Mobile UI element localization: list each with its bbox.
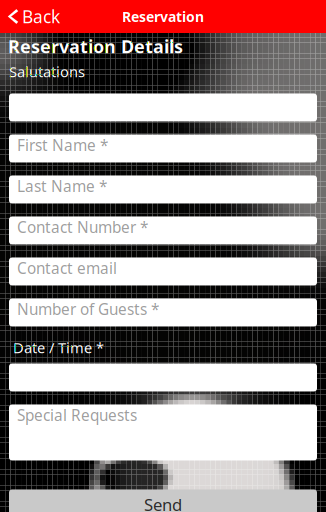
staticText: Special Requests	[17, 404, 137, 425]
staticText: Date / Time *	[13, 337, 104, 357]
button[interactable]: Contact Number *	[9, 216, 317, 244]
staticText: Number of Guests *	[17, 299, 159, 319]
button[interactable]: Contact email	[9, 257, 317, 285]
staticText: Reservation	[122, 7, 204, 26]
button[interactable]: Send	[9, 489, 317, 512]
staticText: Reservation Details	[8, 34, 183, 58]
button[interactable]	[9, 93, 317, 121]
staticText: Last Name *	[17, 176, 107, 196]
button[interactable]: Back	[0, 0, 60, 33]
button[interactable]: Special Requests	[9, 404, 317, 460]
staticText: Contact Number *	[17, 217, 148, 237]
staticText: First Name *	[17, 135, 108, 155]
staticText: Salutations	[9, 61, 85, 81]
button[interactable]: First Name *	[9, 134, 317, 162]
staticText: Back	[22, 5, 60, 28]
button[interactable]: Number of Guests *	[9, 298, 317, 326]
staticText: Send	[144, 493, 182, 512]
button[interactable]	[9, 363, 317, 391]
button[interactable]: Last Name *	[9, 175, 317, 203]
staticText: Contact email	[17, 258, 117, 278]
